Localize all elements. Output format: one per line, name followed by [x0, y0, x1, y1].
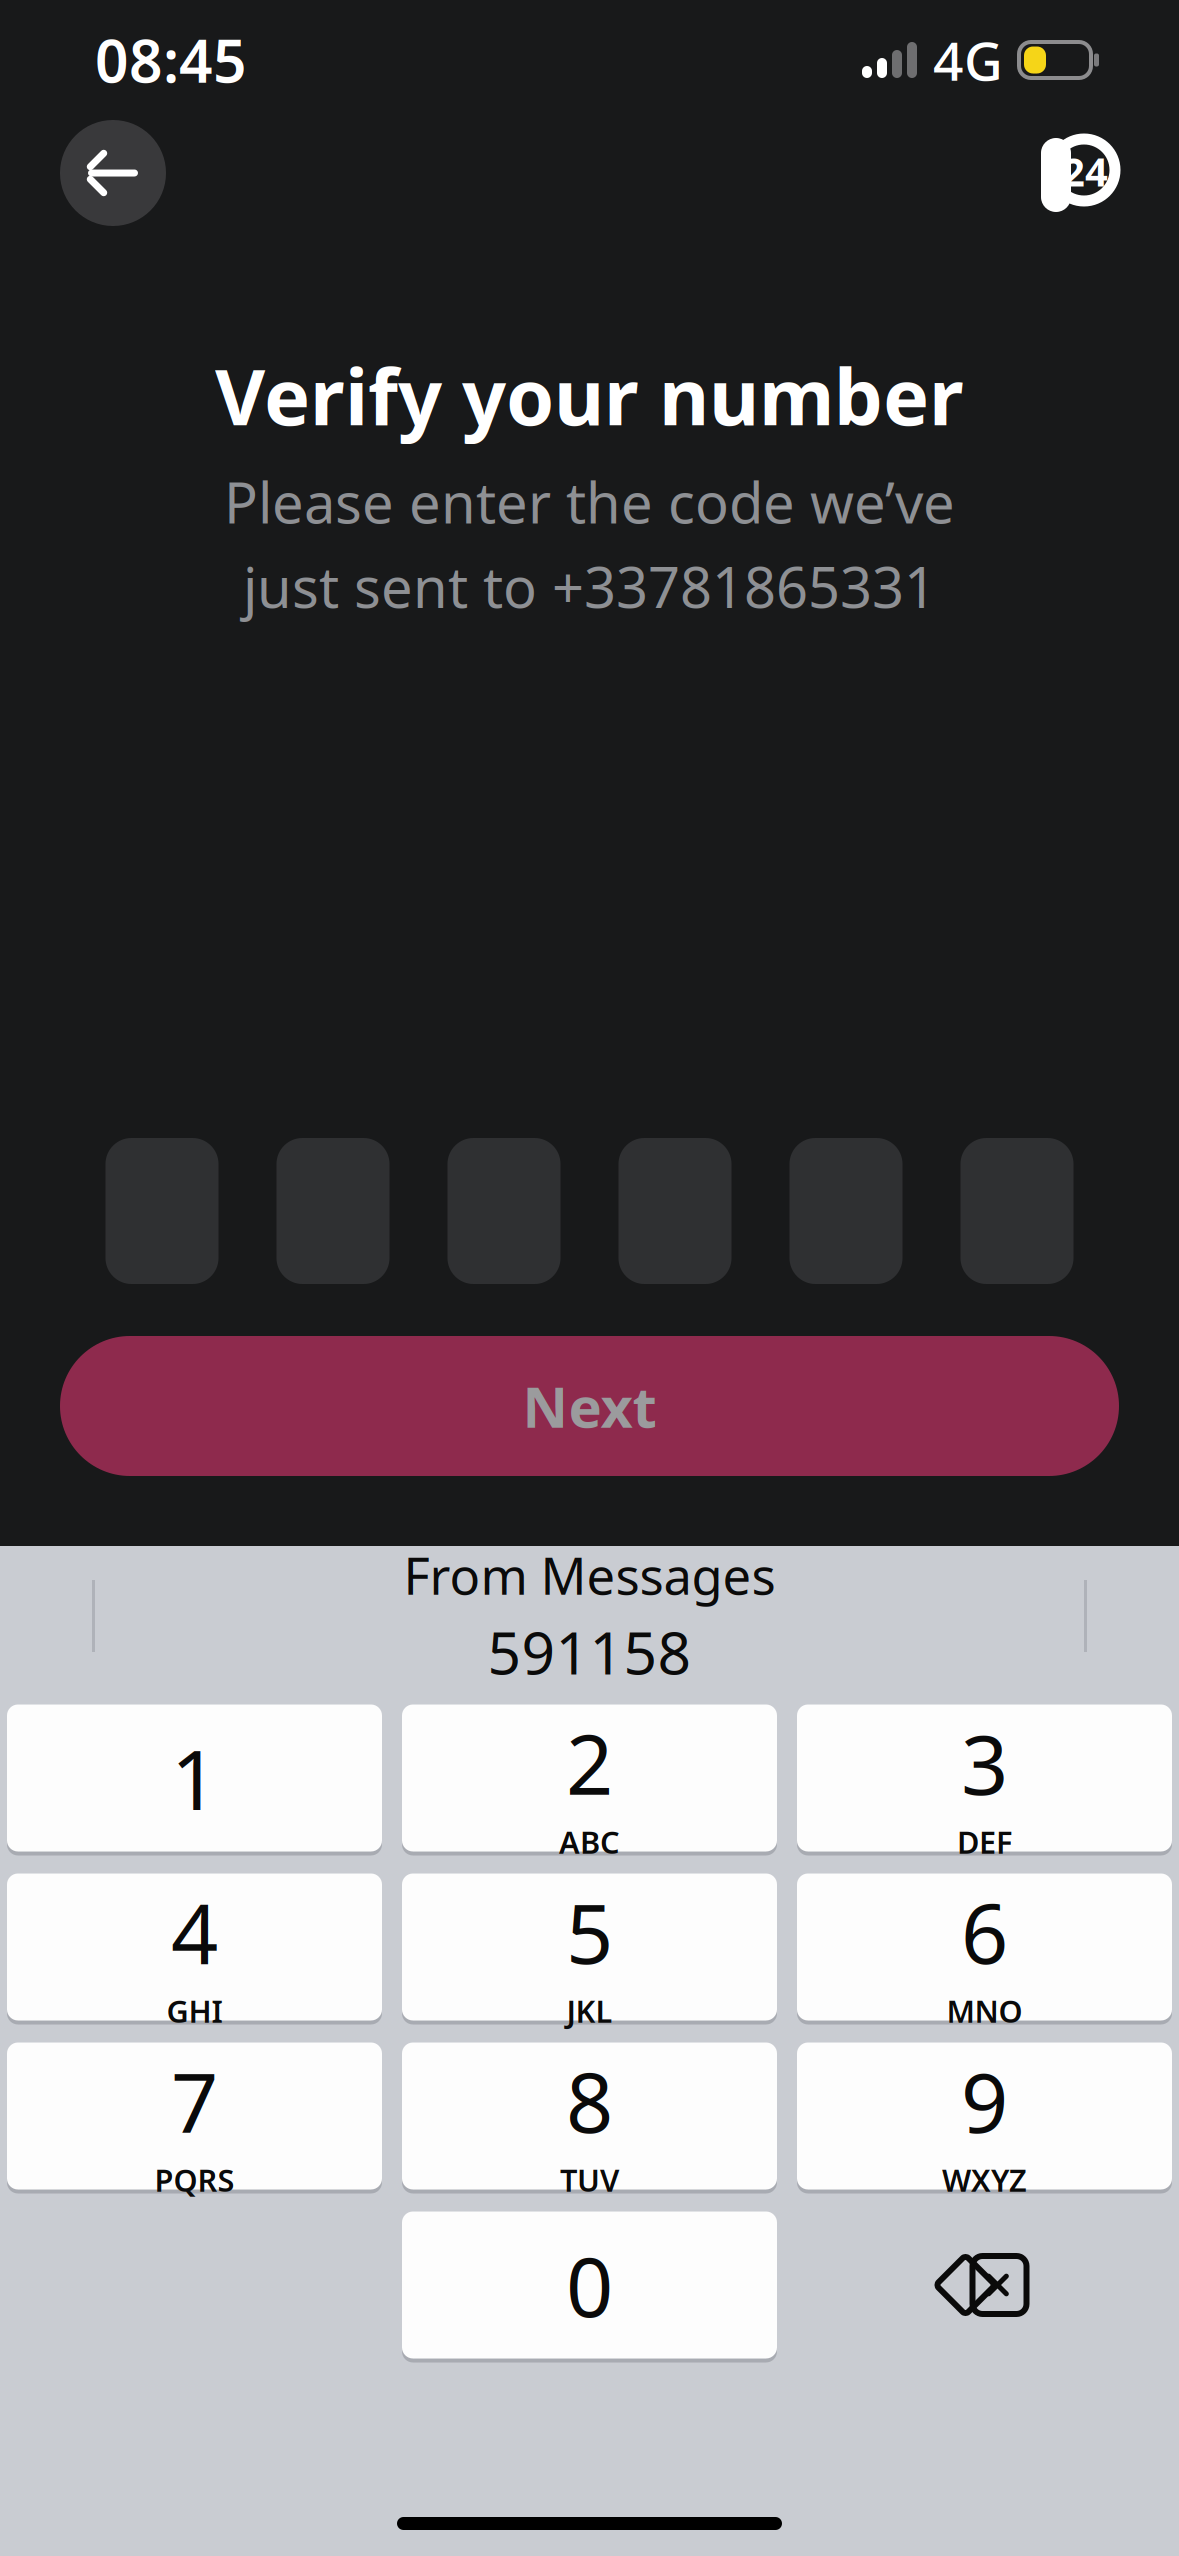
button[interactable]: From Messages: [403, 1541, 775, 1691]
staticText: TUV: [560, 2159, 619, 2200]
staticText: 0: [566, 2230, 613, 2340]
button[interactable]: 8: [402, 2040, 777, 2192]
staticText: 9: [961, 2046, 1008, 2155]
button[interactable]: Delete: [797, 2211, 1172, 2358]
button[interactable]: 24 hour support: [1025, 125, 1121, 221]
staticText: Please enter the code we’ve: [224, 465, 955, 539]
button[interactable]: 3: [797, 1702, 1172, 1854]
staticText: PQRS: [154, 2159, 234, 2200]
button[interactable]: 0: [402, 2209, 777, 2361]
staticText: GHI: [166, 1990, 222, 2031]
staticText: 1: [171, 1723, 218, 1833]
staticText: MNO: [946, 1990, 1022, 2031]
staticText: WXYZ: [942, 2159, 1027, 2200]
staticText: 6: [961, 1877, 1008, 1986]
button[interactable]: 6: [797, 1871, 1172, 2023]
staticText: just sent to +33781865331: [243, 549, 936, 623]
staticText: Next: [522, 1369, 656, 1443]
button[interactable]: 2: [402, 1702, 777, 1854]
button[interactable]: 9: [797, 2040, 1172, 2192]
staticText: Verify your number: [215, 344, 964, 447]
staticText: 7: [171, 2046, 218, 2155]
staticText: 3: [961, 1708, 1008, 1817]
staticText: DEF: [957, 1821, 1012, 1862]
button[interactable]: 4: [7, 1871, 382, 2023]
staticText: 24: [1062, 144, 1108, 197]
button[interactable]: 1: [7, 1702, 382, 1854]
staticText: JKL: [566, 1990, 612, 2031]
button[interactable]: 5: [402, 1871, 777, 2023]
staticText: 8: [566, 2046, 613, 2155]
staticText: 5: [566, 1877, 613, 1986]
staticText: 08:45: [95, 21, 247, 99]
staticText: ABC: [559, 1821, 620, 1862]
staticText: 591158: [487, 1613, 691, 1691]
button[interactable]: Back: [60, 120, 166, 226]
staticText: From Messages: [403, 1541, 775, 1609]
button[interactable]: 7: [7, 2040, 382, 2192]
button[interactable]: Next: [60, 1336, 1119, 1476]
staticText: 4G: [933, 25, 1003, 95]
staticText: 4: [171, 1877, 218, 1986]
staticText: 2: [566, 1708, 613, 1817]
